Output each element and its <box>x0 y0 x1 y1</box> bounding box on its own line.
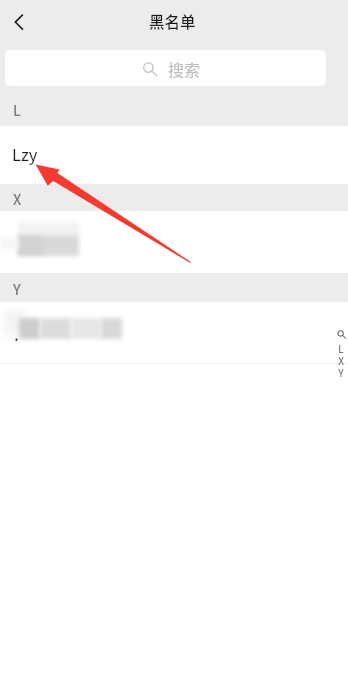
staticText: X <box>13 189 22 209</box>
button[interactable] <box>0 302 348 363</box>
staticText: Lzy <box>12 142 38 166</box>
staticText: L <box>13 100 21 120</box>
staticText: 搜索 <box>168 57 201 80</box>
staticText: Y <box>13 279 21 299</box>
button[interactable]: X <box>333 353 348 365</box>
button[interactable]: 搜索 <box>5 50 326 86</box>
button[interactable]: Y <box>333 365 348 377</box>
staticText: X <box>338 353 344 365</box>
button[interactable] <box>0 211 348 273</box>
staticText: Y <box>338 365 344 377</box>
staticText: 黑名单 <box>149 10 196 32</box>
button[interactable]: Back <box>1 3 39 41</box>
button[interactable]: L <box>333 341 348 353</box>
button[interactable]: Search contacts <box>333 328 348 341</box>
staticText: L <box>338 341 344 353</box>
button[interactable]: Lzy <box>0 126 348 184</box>
